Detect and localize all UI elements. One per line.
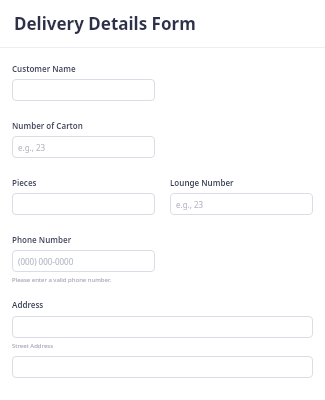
staticText: Please enter a valid phone number. xyxy=(12,276,112,284)
button[interactable]: (000) 000-0000 xyxy=(12,250,155,272)
staticText: Delivery Details Form xyxy=(14,12,196,35)
staticText: Lounge Number xyxy=(170,177,234,188)
staticText: Phone Number xyxy=(12,234,72,245)
button[interactable] xyxy=(12,193,155,215)
staticText: Pieces xyxy=(12,177,37,188)
button[interactable] xyxy=(12,316,313,338)
staticText: e.g., 23 xyxy=(176,199,204,210)
button[interactable]: e.g., 23 xyxy=(170,193,313,215)
button[interactable] xyxy=(12,356,313,378)
staticText: Customer Name xyxy=(12,63,76,74)
staticText: (000) 000-0000 xyxy=(18,256,74,267)
staticText: Street Address xyxy=(12,342,54,350)
button[interactable]: e.g., 23 xyxy=(12,136,155,158)
button[interactable] xyxy=(12,79,155,101)
staticText: Address xyxy=(12,299,44,310)
staticText: Number of Carton xyxy=(12,120,83,131)
staticText: e.g., 23 xyxy=(18,142,46,153)
